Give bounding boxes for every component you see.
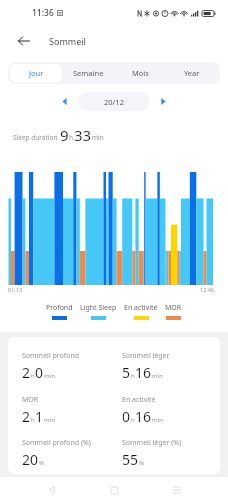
staticText: En activité — [122, 395, 156, 405]
button[interactable]: Next day — [157, 95, 170, 108]
button[interactable]: Recent apps — [166, 479, 188, 501]
staticText: h — [131, 416, 135, 424]
staticText: Sommeil léger (%) — [122, 438, 182, 448]
staticText: h — [69, 133, 74, 142]
staticText: h — [131, 372, 135, 380]
staticText: 0 — [122, 407, 131, 426]
staticText: Sleep duration — [13, 133, 58, 142]
staticText: 20 — [22, 450, 39, 469]
staticText: 12:46 — [200, 286, 215, 293]
staticText: 01:13 — [8, 286, 23, 293]
button[interactable]: Back — [41, 479, 63, 501]
staticText: En activité — [124, 303, 158, 313]
button[interactable]: Mois — [114, 64, 166, 82]
staticText: Sommeil profond (%) — [22, 438, 91, 448]
staticText: MOR — [22, 395, 39, 405]
staticText: MOR — [165, 303, 182, 313]
staticText: 2 — [22, 407, 31, 426]
staticText: 16 — [135, 363, 152, 382]
staticText: 16 — [135, 407, 152, 426]
staticText: Sommeil léger — [122, 351, 170, 361]
button[interactable]: Home — [103, 479, 125, 501]
staticText: Mois — [132, 68, 149, 78]
staticText: 9 — [60, 125, 69, 145]
staticText: 5 — [122, 363, 131, 382]
staticText: min — [152, 416, 163, 424]
staticText: min — [92, 133, 104, 142]
staticText: 11:36 — [32, 7, 54, 19]
staticText: 2 — [22, 363, 31, 382]
button[interactable]: Previous day — [58, 95, 71, 108]
button[interactable]: Jour — [10, 64, 62, 82]
staticText: 0 — [35, 363, 44, 382]
staticText: Sommeil — [49, 35, 86, 47]
staticText: Semaine — [73, 68, 104, 78]
staticText: Light Sleep — [80, 303, 117, 313]
staticText: % — [139, 459, 144, 467]
staticText: 1 — [35, 407, 44, 426]
staticText: min — [152, 372, 163, 380]
staticText: Profond — [46, 303, 73, 313]
staticText: Jour — [29, 68, 44, 78]
staticText: h — [31, 372, 35, 380]
staticText: Year — [184, 68, 200, 78]
button[interactable]: 20/12 — [78, 92, 150, 111]
staticText: 20/12 — [104, 97, 124, 107]
staticText: Sommeil profond — [22, 351, 80, 361]
staticText: 55 — [122, 450, 139, 469]
button[interactable]: Back — [13, 30, 35, 52]
staticText: h — [31, 416, 35, 424]
staticText: min — [44, 372, 55, 380]
staticText: min — [44, 416, 55, 424]
staticText: 33 — [74, 125, 92, 145]
staticText: % — [39, 459, 44, 467]
button[interactable]: Year — [166, 64, 218, 82]
button[interactable]: Semaine — [62, 64, 114, 82]
